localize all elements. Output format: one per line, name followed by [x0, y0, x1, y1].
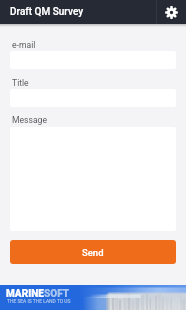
button[interactable]: Settings — [157, 0, 186, 24]
staticText: THE SEA IS THE LAND TO US — [7, 298, 71, 304]
staticText: Draft QM Survey — [10, 6, 84, 18]
staticText: SOFT — [44, 288, 70, 300]
staticText: MARINE — [6, 288, 44, 300]
button[interactable]: MARINE — [0, 285, 186, 310]
staticText: Title — [12, 78, 29, 88]
staticText: e-mail — [12, 40, 36, 50]
staticText: Send — [82, 247, 104, 258]
staticText: Message — [12, 115, 47, 125]
button[interactable]: Send — [10, 240, 176, 264]
